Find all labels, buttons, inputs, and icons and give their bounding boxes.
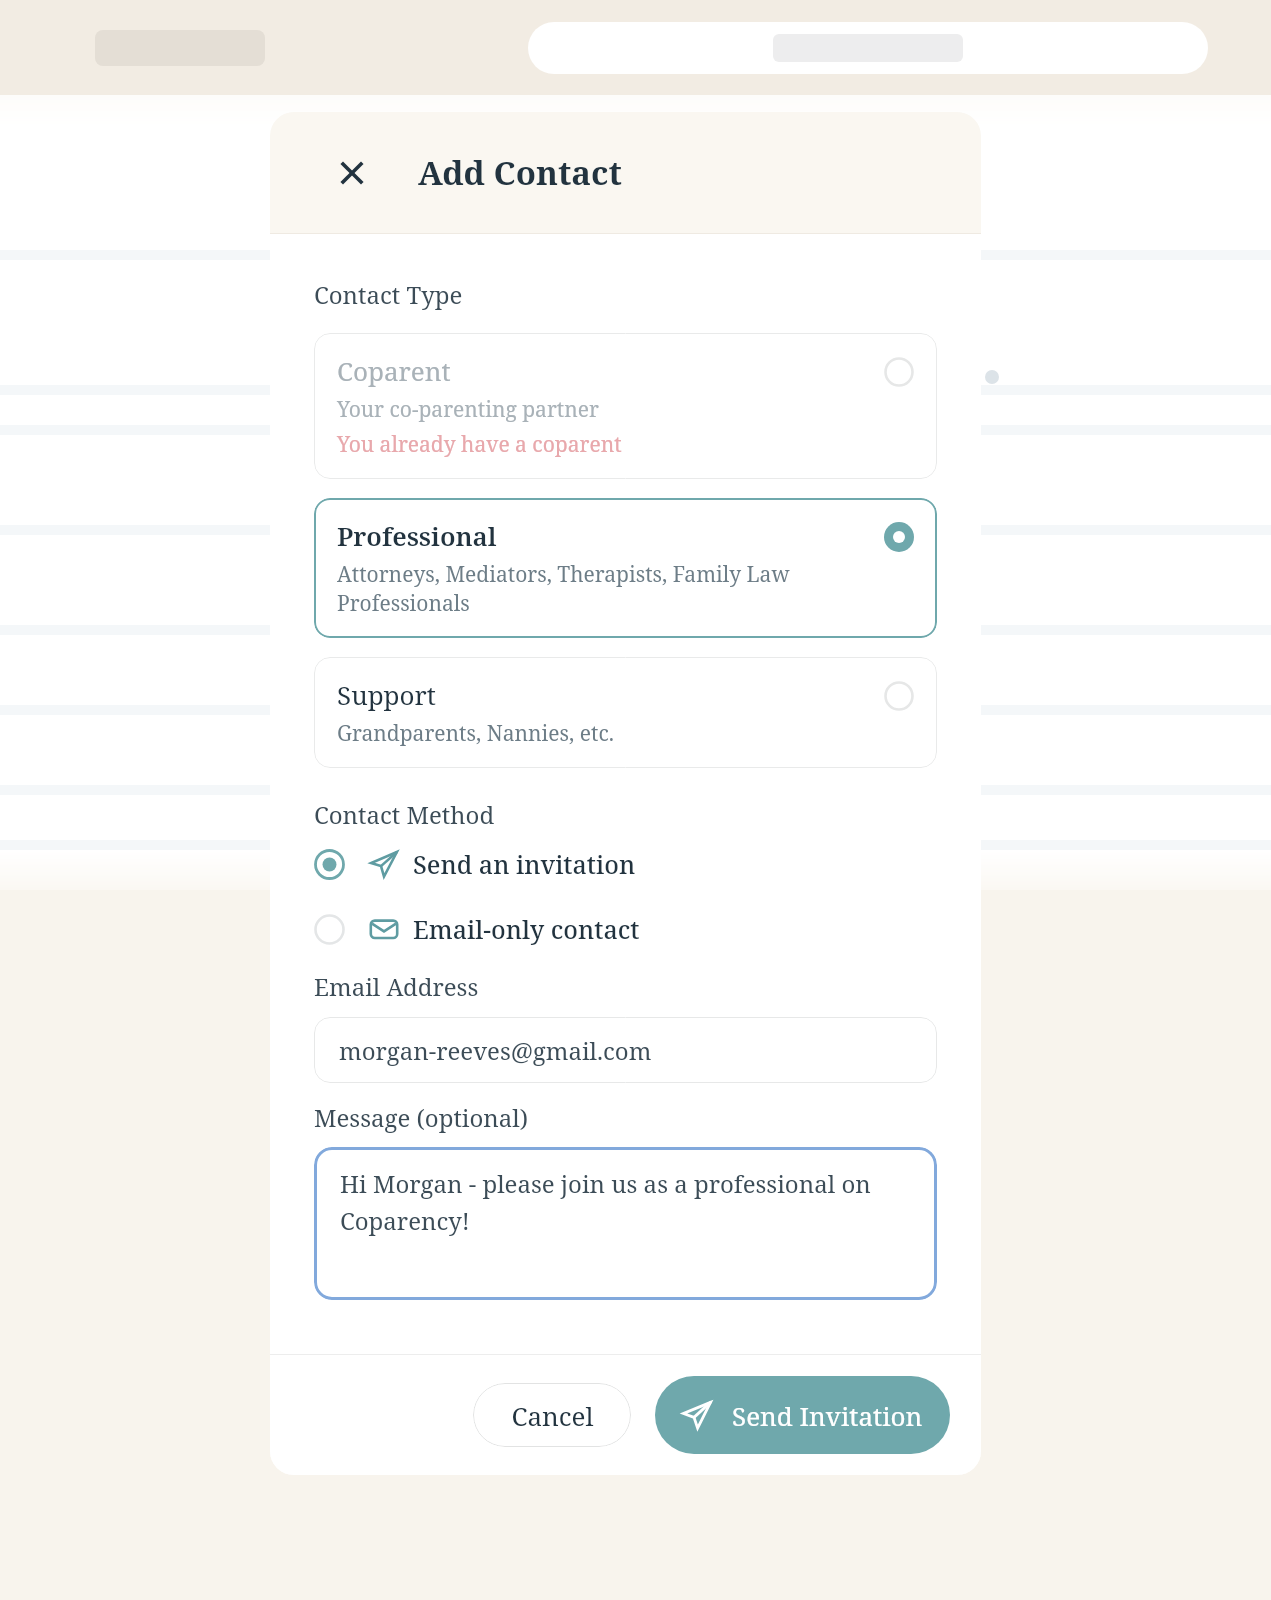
- button[interactable]: Professional: [314, 498, 937, 638]
- staticText: Professional: [337, 518, 497, 553]
- staticText: Add Contact: [418, 150, 622, 195]
- staticText: morgan-reeves@gmail.com: [339, 1034, 652, 1067]
- staticText: Email Address: [314, 970, 479, 1003]
- staticText: Your co-parenting partner: [337, 395, 599, 424]
- staticText: Contact Type: [314, 278, 463, 311]
- staticText: Send an invitation: [413, 847, 636, 881]
- staticText: Hi Morgan - please join us as a professi…: [340, 1167, 907, 1237]
- staticText: Send Invitation: [732, 1398, 923, 1433]
- staticText: Support: [337, 677, 436, 712]
- button[interactable]: Send an invitation: [314, 843, 937, 885]
- button[interactable]: Hi Morgan - please join us as a professi…: [314, 1147, 937, 1300]
- staticText: Coparent: [337, 353, 451, 388]
- button[interactable]: Coparent: [314, 333, 937, 479]
- staticText: You already have a coparent: [337, 430, 622, 459]
- button[interactable]: morgan-reeves@gmail.com: [314, 1017, 937, 1083]
- staticText: Cancel: [511, 1398, 594, 1433]
- button[interactable]: Close: [330, 151, 374, 195]
- staticText: Grandparents, Nannies, etc.: [337, 719, 614, 748]
- staticText: Message (optional): [314, 1101, 529, 1134]
- button[interactable]: Email-only contact: [314, 908, 937, 950]
- button[interactable]: Send Invitation: [655, 1376, 950, 1454]
- button[interactable]: Support: [314, 657, 937, 768]
- staticText: Email-only contact: [413, 912, 640, 946]
- button[interactable]: Cancel: [473, 1383, 631, 1447]
- staticText: Attorneys, Mediators, Therapists, Family…: [337, 560, 858, 618]
- staticText: Contact Method: [314, 798, 495, 831]
